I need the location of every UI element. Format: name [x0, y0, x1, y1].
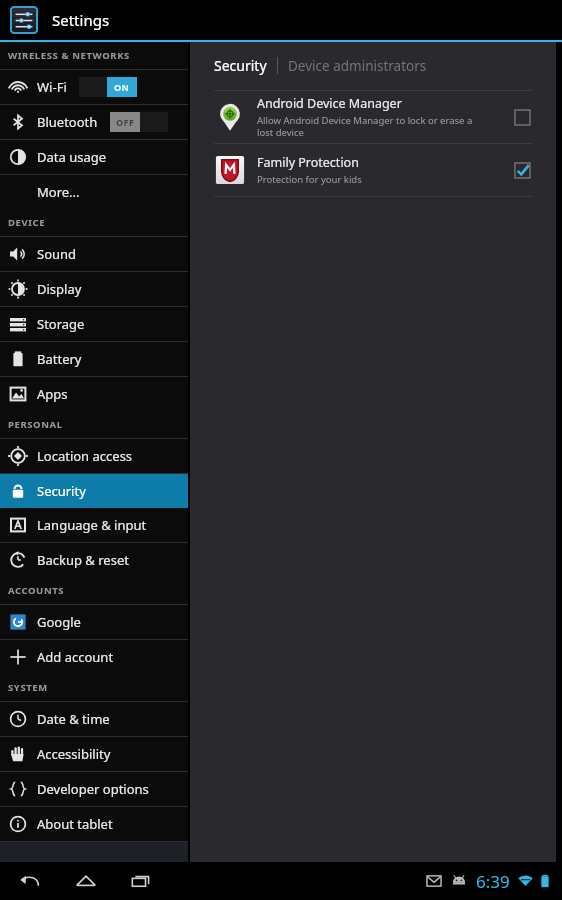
button[interactable]: Bluetooth — [0, 105, 188, 139]
staticText: SYSTEM — [8, 681, 48, 694]
staticText: Device administrators — [288, 57, 427, 75]
staticText: Backup & reset — [37, 551, 129, 569]
staticText: Security — [37, 482, 86, 500]
staticText: ACCOUNTS — [8, 584, 65, 597]
button[interactable]: Security — [0, 474, 188, 508]
button[interactable]: Wi-Fi — [0, 70, 188, 104]
staticText: Data usage — [37, 148, 107, 166]
staticText: About tablet — [37, 815, 113, 833]
button[interactable]: Backup & reset — [0, 543, 188, 577]
button[interactable]: Unchecked — [512, 107, 532, 127]
button[interactable]: Android Device Manager — [190, 91, 556, 143]
button[interactable]: Checked — [512, 160, 532, 180]
staticText: OFF — [116, 116, 135, 128]
button[interactable]: Accessibility — [0, 737, 188, 771]
staticText: Storage — [37, 315, 85, 333]
staticText: PERSONAL — [8, 418, 63, 431]
button[interactable]: About tablet — [0, 807, 188, 841]
staticText: Location access — [37, 447, 133, 465]
button[interactable]: Location access — [0, 439, 188, 473]
staticText: Display — [37, 280, 82, 298]
button[interactable]: Display — [0, 272, 188, 306]
staticText: Google — [37, 613, 81, 631]
staticText: Language & input — [37, 516, 147, 534]
staticText: Apps — [37, 385, 68, 403]
button[interactable]: Apps — [0, 377, 188, 411]
button[interactable]: Add account — [0, 640, 188, 674]
button[interactable]: Battery — [0, 342, 188, 376]
button[interactable]: Google — [0, 605, 188, 639]
button[interactable]: Back — [10, 866, 50, 896]
button[interactable]: Storage — [0, 307, 188, 341]
button[interactable]: Home — [66, 866, 106, 896]
staticText: Sound — [37, 245, 77, 263]
staticText: Battery — [37, 350, 82, 368]
button[interactable]: Developer options — [0, 772, 188, 806]
staticText: Security — [214, 56, 267, 75]
button[interactable]: Switch on — [79, 77, 137, 97]
staticText: WIRELESS & NETWORKS — [8, 49, 130, 62]
staticText: Wi-Fi — [37, 78, 67, 96]
button[interactable]: Settings — [9, 5, 39, 35]
staticText: Settings — [52, 10, 110, 30]
staticText: Protection for your kids — [257, 173, 362, 186]
staticText: ON — [114, 81, 130, 93]
staticText: Family Protection — [257, 154, 359, 171]
staticText: Developer options — [37, 780, 149, 798]
staticText: Accessibility — [37, 745, 111, 763]
staticText: DEVICE — [8, 216, 46, 229]
staticText: 6:39 — [476, 870, 510, 893]
button[interactable]: Device administrators — [288, 55, 427, 77]
button[interactable]: Data usage — [0, 140, 188, 174]
button[interactable]: Recent apps — [122, 866, 162, 896]
staticText: Android Device Manager — [257, 95, 402, 112]
button[interactable]: Date & time — [0, 702, 188, 736]
staticText: Date & time — [37, 710, 110, 728]
button[interactable]: Switch off — [110, 112, 168, 132]
staticText: Bluetooth — [37, 113, 98, 131]
button[interactable]: Sound — [0, 237, 188, 271]
staticText: Allow Android Device Manager to lock or … — [257, 114, 473, 139]
button[interactable]: Language & input — [0, 508, 188, 542]
staticText: More... — [37, 183, 80, 201]
staticText: Add account — [37, 648, 114, 666]
button[interactable]: Family Protection — [190, 144, 556, 196]
button[interactable]: More... — [0, 175, 188, 209]
button[interactable]: Security — [214, 54, 267, 77]
